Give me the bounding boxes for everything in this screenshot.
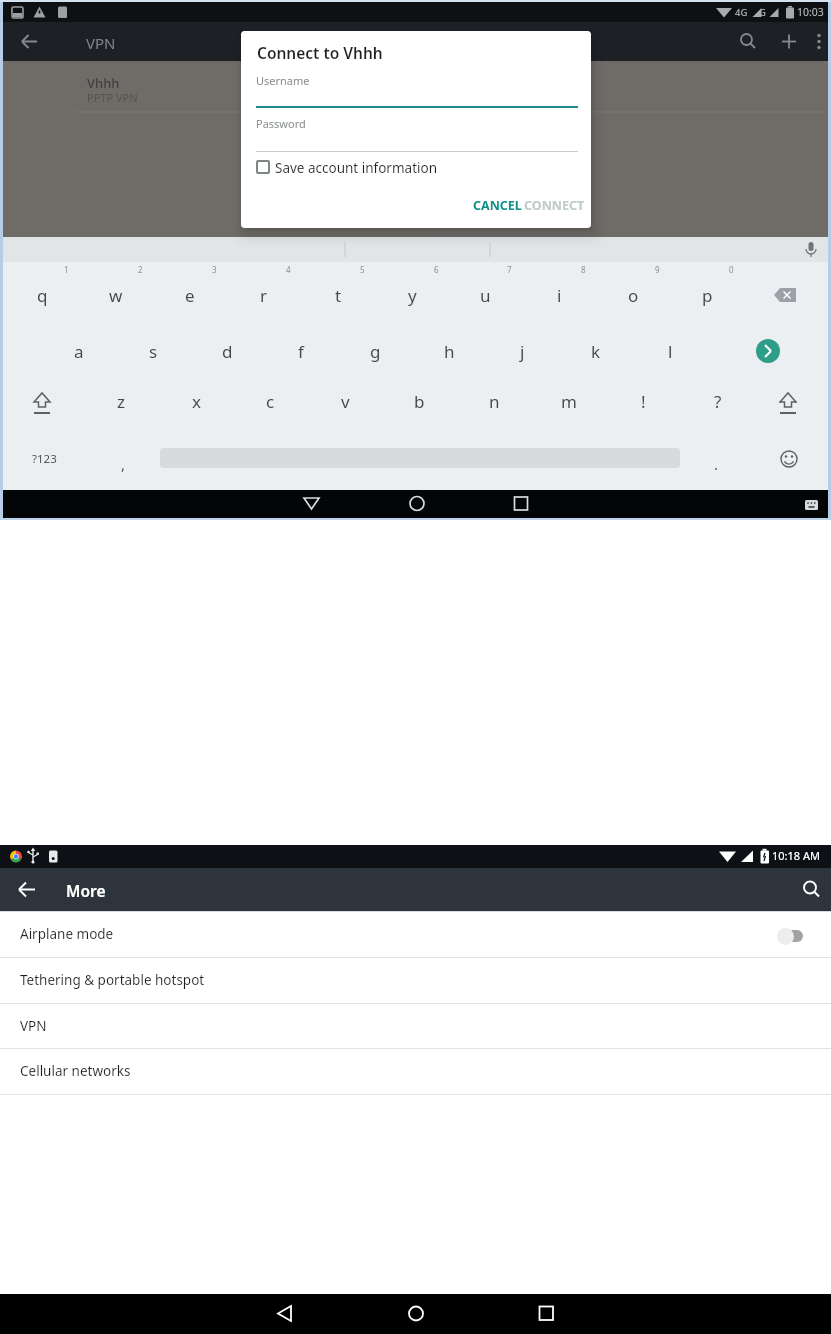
staticText: Connect to Vhhh (257, 42, 383, 63)
button[interactable] (20, 381, 64, 421)
staticText: 3 (212, 264, 217, 275)
button[interactable]: p (677, 273, 737, 317)
staticText: PPTP VPN (87, 90, 138, 105)
button[interactable] (775, 28, 803, 56)
staticText: ?123 (32, 451, 57, 467)
staticText: ? (714, 390, 722, 413)
staticText: z (117, 390, 125, 413)
button[interactable] (756, 339, 780, 363)
staticText: 0 (729, 264, 734, 275)
button[interactable]: k (566, 329, 626, 373)
button[interactable]: VPN (0, 1003, 831, 1049)
staticText: More (66, 880, 106, 901)
button[interactable] (528, 1297, 564, 1331)
button[interactable] (797, 875, 827, 905)
button[interactable]: Tethering & portable hotspot (0, 957, 831, 1003)
button[interactable]: , (93, 442, 153, 486)
staticText: q (37, 284, 48, 307)
button[interactable]: t (308, 273, 368, 317)
button[interactable] (806, 28, 831, 56)
button[interactable]: Airplane mode (0, 911, 831, 957)
button[interactable] (767, 439, 811, 479)
staticText: 6 (434, 264, 439, 275)
staticText: x (192, 390, 201, 413)
button[interactable]: q (12, 273, 72, 317)
button[interactable]: x (166, 379, 226, 423)
button[interactable] (395, 490, 439, 518)
button[interactable]: w (86, 273, 146, 317)
staticText: c (266, 390, 275, 413)
button[interactable] (499, 490, 543, 518)
staticText: CANCEL (473, 197, 522, 214)
button[interactable]: a (49, 329, 109, 373)
button[interactable]: d (197, 329, 257, 373)
button[interactable]: z (91, 379, 151, 423)
button[interactable]: CANCEL (457, 185, 537, 225)
button[interactable]: g (345, 329, 405, 373)
button[interactable] (290, 490, 334, 518)
button[interactable] (763, 275, 809, 315)
button[interactable]: v (315, 379, 375, 423)
button[interactable]: e (160, 273, 220, 317)
button[interactable]: o (603, 273, 663, 317)
button[interactable]: i (529, 273, 589, 317)
button[interactable]: ! (613, 379, 673, 423)
staticText: Vhhh (87, 74, 120, 92)
staticText: 5 (360, 264, 365, 275)
button[interactable] (12, 875, 42, 905)
button[interactable]: b (389, 379, 449, 423)
staticText: Password (256, 116, 306, 131)
staticText: t (335, 284, 342, 307)
button[interactable]: CONNECT (514, 185, 591, 225)
button[interactable]: s (123, 329, 183, 373)
staticText: e (185, 284, 195, 307)
staticText: w (109, 284, 123, 307)
button[interactable] (766, 381, 810, 421)
staticText: VPN (86, 33, 116, 53)
staticText: 1 (64, 264, 69, 275)
button[interactable]: l (640, 329, 700, 373)
staticText: o (628, 284, 639, 307)
button[interactable] (256, 133, 578, 153)
staticText: , (121, 454, 126, 474)
button[interactable]: r (234, 273, 294, 317)
staticText: 10:03 (797, 5, 824, 19)
button[interactable] (779, 930, 803, 942)
button[interactable]: u (455, 273, 515, 317)
button[interactable]: ? (688, 379, 748, 423)
button[interactable] (733, 28, 761, 56)
button[interactable] (256, 88, 578, 108)
staticText: d (222, 340, 233, 363)
button[interactable] (398, 1297, 434, 1331)
button[interactable]: Cellular networks (0, 1048, 831, 1094)
staticText: 4 (286, 264, 291, 275)
staticText: a (74, 340, 84, 363)
button[interactable] (12, 28, 42, 56)
button[interactable]: m (539, 379, 599, 423)
staticText: VPN (20, 1017, 47, 1035)
staticText: v (341, 390, 350, 413)
button[interactable]: y (382, 273, 442, 317)
button[interactable] (0, 61, 831, 112)
staticText: Username (256, 73, 310, 88)
button[interactable]: c (240, 379, 300, 423)
button[interactable]: Save account information (256, 160, 456, 176)
staticText: Save account information (275, 159, 438, 175)
button[interactable] (266, 1297, 302, 1331)
staticText: p (702, 284, 713, 307)
button[interactable]: h (419, 329, 479, 373)
staticText: 8 (581, 264, 586, 275)
button[interactable]: j (492, 329, 552, 373)
button[interactable]: f (271, 329, 331, 373)
staticText: 9 (655, 264, 660, 275)
button[interactable]: ?123 (14, 437, 74, 481)
staticText: j (520, 340, 525, 363)
staticText: m (561, 390, 577, 413)
staticText: f (298, 340, 304, 363)
button[interactable]: . (686, 442, 746, 486)
button[interactable] (797, 237, 831, 262)
staticText: r (260, 284, 268, 307)
staticText: Airplane mode (20, 925, 114, 943)
button[interactable]: n (464, 379, 524, 423)
